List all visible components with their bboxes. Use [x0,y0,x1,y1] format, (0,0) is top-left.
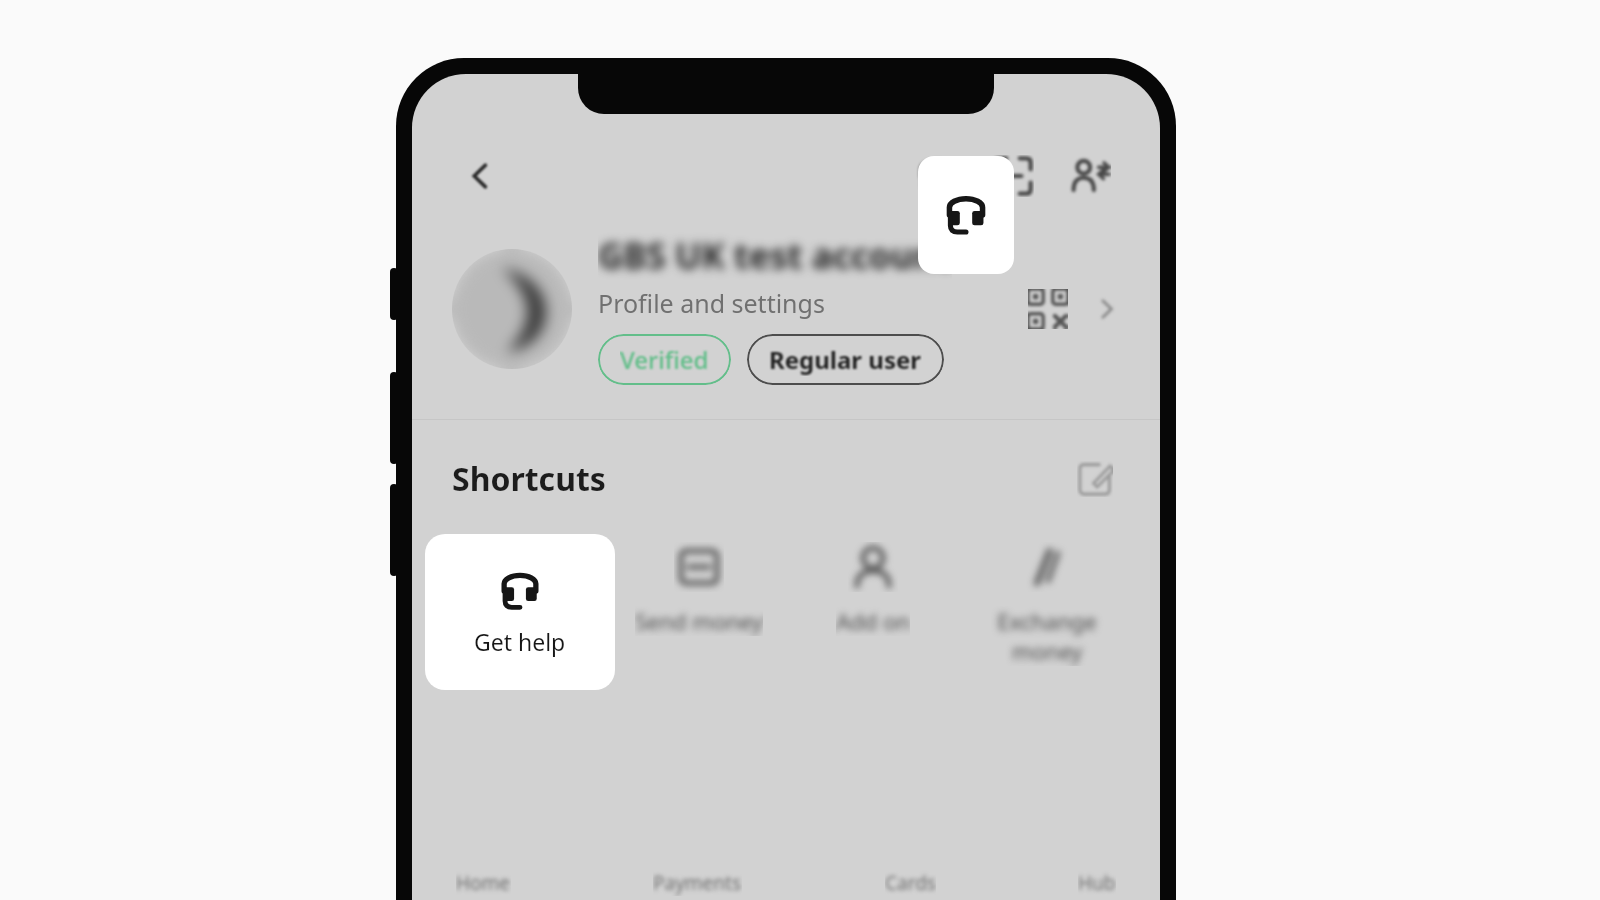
staticText: Payments [653,870,742,896]
button[interactable]: Regular user [747,334,944,385]
button[interactable]: Get help [446,542,604,636]
staticText: Hub [1078,870,1116,896]
button[interactable]: Edit shortcuts [1070,454,1120,504]
staticText: Home [456,870,511,896]
staticText: GBS UK test account [598,232,952,280]
staticText: Exchange money [968,606,1126,666]
button[interactable]: Get help [906,145,968,207]
button[interactable]: Show QR code [1020,281,1076,337]
staticText: Shortcuts [452,457,606,501]
button[interactable]: Scan code [982,145,1044,207]
staticText: Send money [635,606,763,636]
staticText: Verified [620,343,709,376]
button[interactable]: Back [452,148,508,204]
staticText: Get help [481,606,569,636]
staticText: Regular user [769,343,922,376]
button[interactable]: Verified [598,334,731,385]
button[interactable]: Get help [918,156,1014,274]
button[interactable]: Add contact [1058,145,1120,207]
staticText: Add on [836,606,910,636]
button[interactable]: GBS UK test account [452,232,1120,385]
staticText: Cards [885,870,936,896]
staticText: Get help [474,626,566,657]
button[interactable]: Add on [794,542,952,636]
button[interactable]: Send money [620,542,778,636]
staticText: Profile and settings [598,286,825,320]
button[interactable]: Get help [425,534,615,690]
button[interactable]: Exchange money [968,542,1126,666]
